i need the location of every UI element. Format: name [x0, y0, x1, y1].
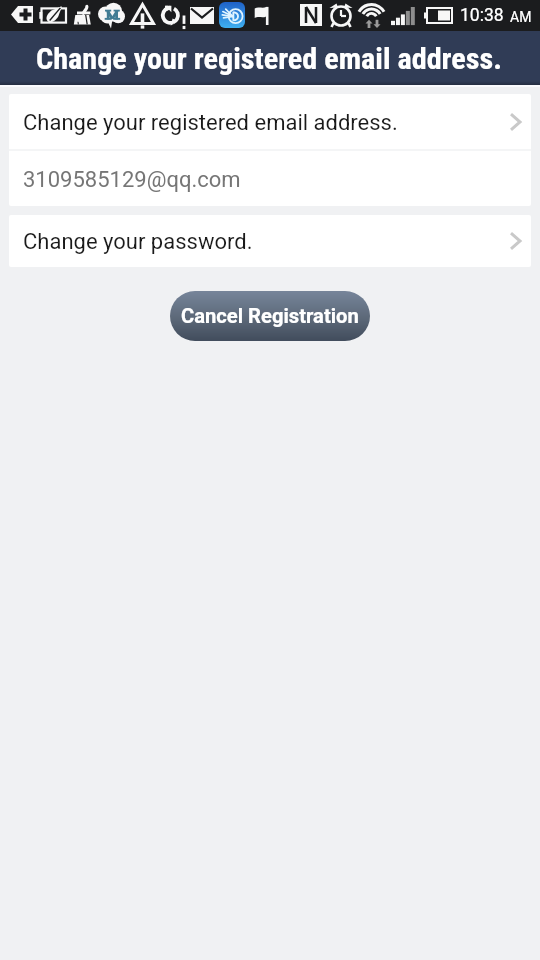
staticText: 3109585129@qq.com — [23, 167, 526, 193]
button[interactable]: 3109585129@qq.com — [9, 151, 531, 206]
staticText: Change your password. — [23, 229, 506, 255]
button[interactable]: Change your registered email address. — [9, 94, 531, 149]
button[interactable]: Cancel Registration — [170, 291, 370, 341]
button[interactable]: Change your password. — [9, 215, 531, 267]
staticText: 10:38 — [460, 5, 504, 26]
staticText: Change your registered email address. — [36, 41, 502, 76]
staticText: Cancel Registration — [181, 304, 359, 328]
staticText: AM — [510, 9, 532, 25]
staticText: Change your registered email address. — [23, 110, 506, 136]
